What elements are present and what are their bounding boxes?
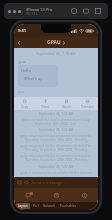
button[interactable]: Network (42, 204, 57, 208)
staticText: Thursday, September 25th 2025 - Pending (17, 148, 95, 152)
button[interactable]: Translate (77, 97, 98, 110)
button[interactable]: Send a message... (32, 180, 95, 185)
staticText: Thursday, September 25th 2025 - Pending (17, 158, 95, 162)
button[interactable]: Hello (18, 65, 58, 87)
button[interactable]: Record (94, 7, 102, 15)
button[interactable]: Back (14, 37, 24, 48)
staticText: Layout (18, 204, 28, 208)
button[interactable]: Settings (70, 188, 98, 202)
staticText: What's up (24, 76, 43, 81)
staticText: Report (62, 105, 72, 109)
staticText: gpau requested the list of current sched… (17, 134, 95, 138)
button[interactable]: GPAU (47, 39, 66, 46)
staticText: Translate (81, 105, 94, 109)
button[interactable]: Profile (42, 188, 70, 202)
staticText: September 26, 1:24 AM (17, 128, 95, 132)
button[interactable]: Layout (16, 203, 30, 209)
button[interactable]: Perf (32, 204, 40, 208)
button[interactable]: Screenshot (82, 7, 90, 15)
staticText: 9:41 (18, 28, 26, 33)
button[interactable]: Rotate (70, 7, 78, 15)
staticText: Thursday, September 25th 2025 - Pending (17, 138, 95, 142)
staticText: Share (41, 105, 50, 109)
button[interactable]: Window controls (8, 10, 21, 13)
staticText: September 26th 2025 - 1:21 (17, 122, 95, 126)
staticText: GPAU (47, 39, 61, 46)
button[interactable]: Chats (14, 188, 42, 202)
staticText: gpau changed the chat's scheduled on Fri… (17, 118, 95, 122)
button[interactable]: Share (35, 97, 56, 110)
staticText: Copy (21, 105, 29, 109)
staticText: gpau (18, 59, 27, 64)
staticText: September 26, 1:32 AM (17, 165, 95, 169)
staticText: you (18, 89, 24, 94)
button[interactable]: Report (56, 97, 77, 110)
staticText: September 26, 1:18 AM (14, 51, 98, 56)
staticText: gpau requested the list of current sched… (17, 144, 95, 148)
staticText: gpau is reviewing recent activity for th… (17, 171, 95, 175)
staticText: Perf (33, 204, 39, 208)
staticText: Touchables (60, 204, 76, 208)
staticText: September 26, 1:20 AM (17, 112, 95, 116)
button[interactable]: Attach (17, 180, 22, 185)
button[interactable]: Camera (24, 180, 29, 185)
staticText: gpau requested the list of current sched… (17, 154, 95, 158)
staticText: iOS 17.2 (26, 12, 38, 16)
staticText: iPhone 13 Pro (26, 7, 53, 12)
button[interactable]: Copy (14, 97, 35, 110)
staticText: Network (43, 204, 56, 208)
staticText: Hello (21, 68, 31, 73)
button[interactable]: Touchables (59, 204, 77, 208)
staticText: Send a message... (32, 180, 66, 185)
